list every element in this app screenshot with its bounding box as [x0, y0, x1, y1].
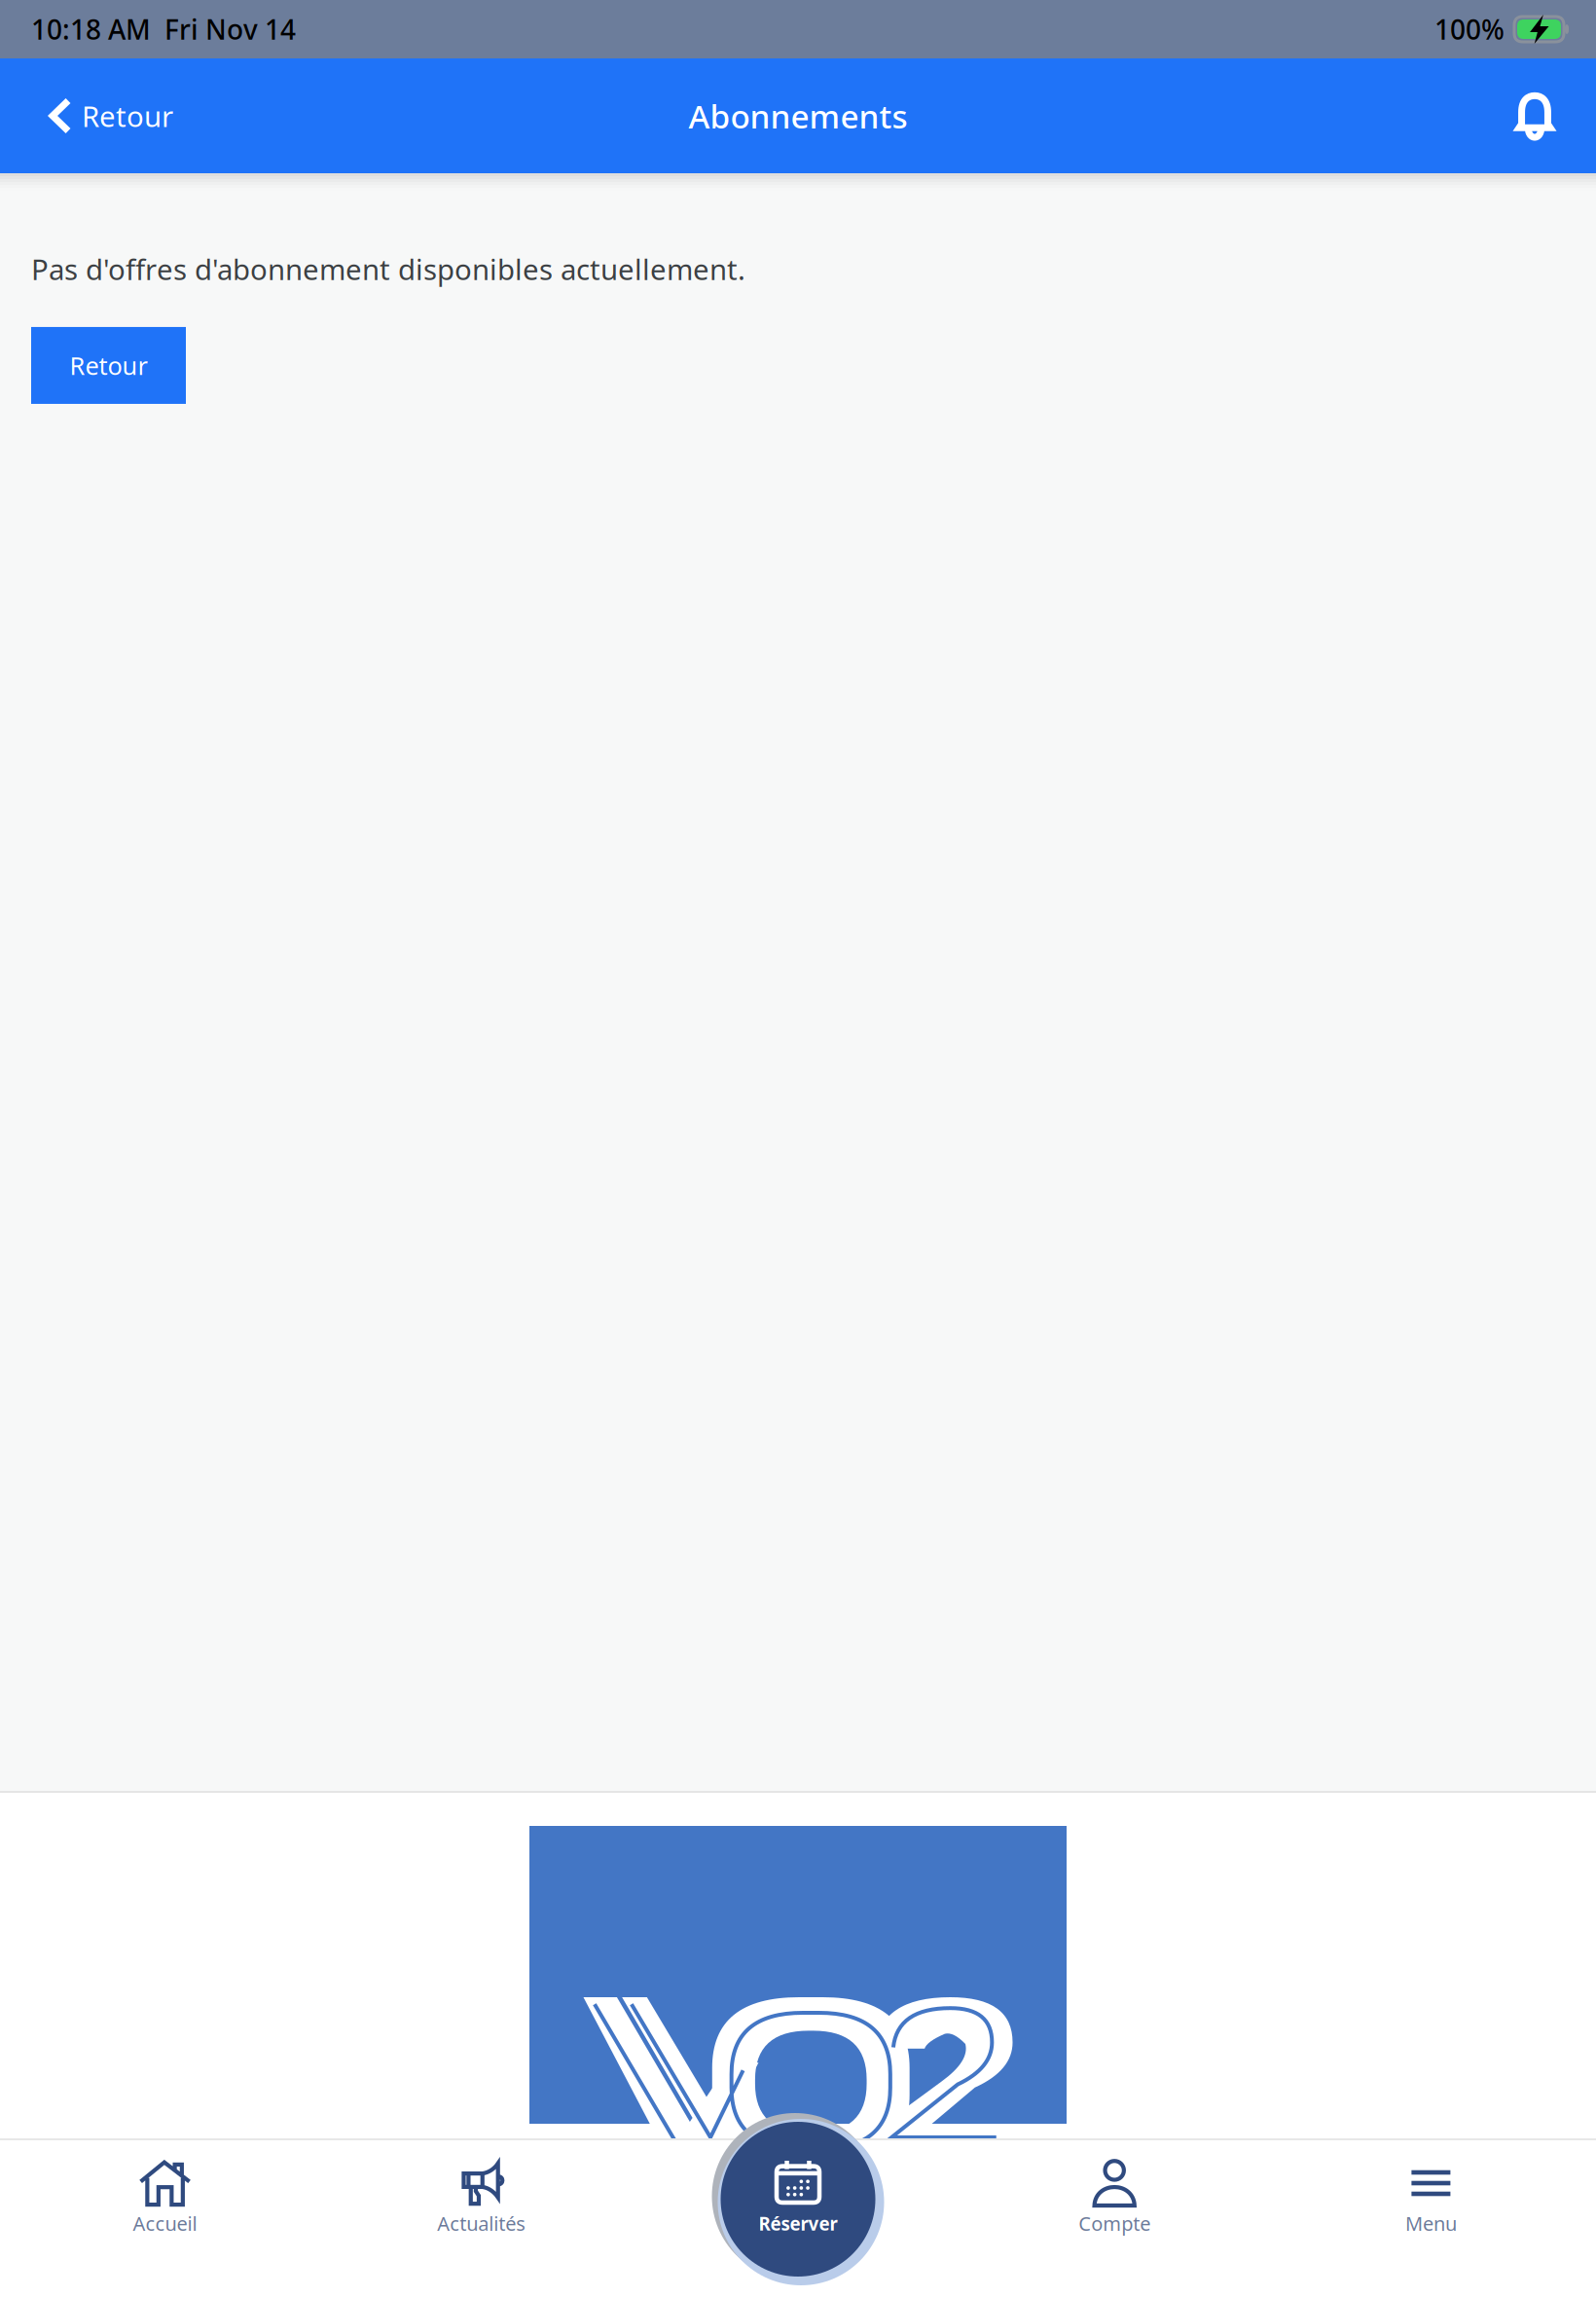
- staticText: 10:18 AM: [31, 11, 151, 47]
- staticText: Retour: [70, 349, 147, 382]
- staticText: Actualités: [437, 2210, 526, 2236]
- staticText: Fri Nov 14: [164, 11, 296, 47]
- staticText: Abonnements: [689, 94, 907, 137]
- staticText: Menu: [1405, 2210, 1457, 2236]
- staticText: Compte: [1078, 2210, 1150, 2236]
- button[interactable]: Menu: [1273, 2138, 1589, 2297]
- button[interactable]: Retour: [31, 327, 186, 404]
- staticText: Accueil: [133, 2210, 197, 2236]
- button[interactable]: Retour: [0, 58, 202, 173]
- button[interactable]: Compte: [956, 2138, 1273, 2297]
- button[interactable]: Réserver: [712, 2113, 884, 2285]
- button[interactable]: Notifications: [1485, 58, 1596, 173]
- staticText: Retour: [82, 97, 173, 135]
- staticText: 100%: [1434, 11, 1505, 47]
- staticText: Réserver: [759, 2211, 837, 2235]
- button[interactable]: Accueil: [7, 2138, 323, 2297]
- staticText: Pas d'offres d'abonnement disponibles ac…: [31, 250, 745, 288]
- button[interactable]: Actualités: [323, 2138, 640, 2297]
